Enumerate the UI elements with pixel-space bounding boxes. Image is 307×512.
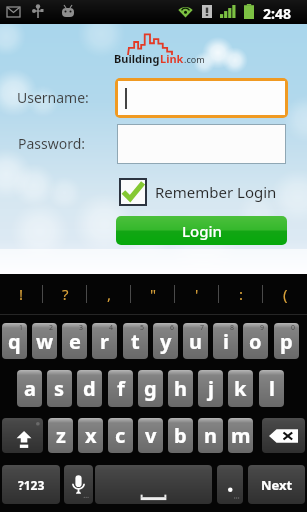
staticText: 4 <box>109 323 114 333</box>
button[interactable]: Shift <box>2 418 43 453</box>
staticText: j <box>208 375 214 402</box>
button[interactable]: , <box>87 274 131 314</box>
button[interactable]: ?123 <box>2 465 60 504</box>
button[interactable]: Delete <box>262 418 305 453</box>
staticText: " <box>150 284 157 304</box>
staticText: .com <box>184 53 205 65</box>
staticText: 7 <box>200 323 205 333</box>
button[interactable]: l <box>259 370 284 407</box>
button[interactable]: i <box>213 323 238 359</box>
staticText: 2:48 <box>263 4 291 23</box>
button[interactable]: Space <box>95 465 212 504</box>
button[interactable]: ' <box>175 274 219 314</box>
staticText: z <box>56 422 66 449</box>
staticText: a <box>24 375 36 402</box>
staticText: u <box>189 328 202 355</box>
staticText: ?123 <box>18 477 45 493</box>
button[interactable]: x <box>78 418 103 453</box>
button[interactable]: ? <box>43 274 87 314</box>
staticText: q <box>8 328 21 355</box>
button[interactable]: p <box>274 323 299 359</box>
staticText: i <box>223 328 229 355</box>
button[interactable]: s <box>47 370 72 407</box>
button[interactable]: g <box>138 370 163 407</box>
button[interactable]: u <box>183 323 208 359</box>
staticText: , <box>107 284 112 304</box>
staticText: Username: <box>17 88 89 107</box>
button[interactable]: j <box>198 370 223 407</box>
button[interactable]: Voice input <box>64 465 93 504</box>
button[interactable]: f <box>108 370 133 407</box>
button[interactable]: v <box>138 418 163 453</box>
staticText: p <box>280 328 293 355</box>
button[interactable]: q <box>2 323 27 359</box>
staticText: 0 <box>291 323 296 333</box>
staticText: m <box>231 422 251 449</box>
staticText: ( <box>283 284 288 304</box>
button[interactable]: a <box>17 370 42 407</box>
staticText: Password: <box>18 134 86 153</box>
button[interactable]: w <box>32 323 57 359</box>
staticText: 1 <box>19 323 24 333</box>
button[interactable]: b <box>168 418 193 453</box>
staticText: w <box>36 328 54 355</box>
staticText: Link <box>160 51 184 66</box>
staticText: Remember Login <box>155 182 277 202</box>
button[interactable]: m <box>228 418 253 453</box>
staticText: k <box>234 375 247 402</box>
staticText: n <box>204 422 217 449</box>
button[interactable]: y <box>153 323 178 359</box>
staticText: h <box>174 375 187 402</box>
button[interactable]: " <box>131 274 175 314</box>
staticText: d <box>83 375 96 402</box>
staticText: l <box>269 375 275 402</box>
staticText: b <box>174 422 187 449</box>
staticText: Building <box>114 51 160 66</box>
staticText: 3 <box>79 323 84 333</box>
button[interactable]: : <box>219 274 263 314</box>
staticText: 9 <box>260 323 265 333</box>
button[interactable]: n <box>198 418 223 453</box>
staticText: c <box>115 422 126 449</box>
button[interactable]: d <box>77 370 102 407</box>
staticText: 6 <box>170 323 175 333</box>
staticText: ' <box>195 284 199 304</box>
staticText: r <box>100 328 109 355</box>
button[interactable]: t <box>123 323 148 359</box>
staticText: Next <box>261 476 293 494</box>
button[interactable]: z <box>48 418 73 453</box>
staticText: 8 <box>230 323 235 333</box>
button[interactable]: Remember Login <box>119 178 277 206</box>
button[interactable]: k <box>228 370 253 407</box>
staticText: 5 <box>140 323 145 333</box>
button[interactable]: ! <box>0 274 43 314</box>
staticText: f <box>117 375 125 402</box>
staticText: : <box>239 284 244 304</box>
staticText: s <box>54 375 65 402</box>
button[interactable]: h <box>168 370 193 407</box>
button[interactable]: Next <box>248 465 305 504</box>
button[interactable]: Login <box>116 216 287 245</box>
button[interactable]: Period <box>217 465 243 504</box>
staticText: ! <box>19 284 24 304</box>
staticText: Login <box>182 221 222 241</box>
staticText: v <box>145 422 157 449</box>
staticText: y <box>160 328 172 355</box>
button[interactable]: e <box>62 323 87 359</box>
button[interactable]: r <box>92 323 117 359</box>
staticText: g <box>144 375 157 402</box>
staticText: e <box>69 328 81 355</box>
button[interactable]: ( <box>263 274 307 314</box>
staticText: x <box>85 422 97 449</box>
button[interactable] <box>118 81 285 115</box>
staticText: ? <box>62 284 69 304</box>
button[interactable]: o <box>243 323 268 359</box>
staticText: t <box>131 328 140 355</box>
staticText: o <box>249 328 262 355</box>
staticText: 2 <box>49 323 54 333</box>
button[interactable]: c <box>108 418 133 453</box>
